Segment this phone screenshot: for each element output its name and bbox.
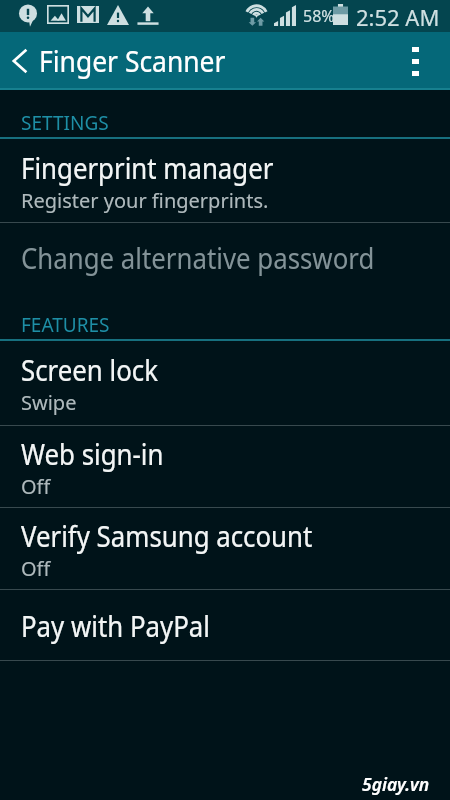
- staticText: 58%: [303, 5, 335, 27]
- button[interactable]: Verify Samsung account: [0, 508, 450, 589]
- button[interactable]: Change alternative password: [0, 223, 450, 292]
- staticText: Verify Samsung account: [21, 516, 313, 555]
- button[interactable]: Fingerprint manager: [0, 139, 450, 222]
- staticText: Register your fingerprints.: [21, 187, 269, 214]
- staticText: Fingerprint manager: [21, 148, 274, 187]
- other: Navigate up: [12, 48, 27, 74]
- staticText: 2:52 AM: [356, 2, 440, 32]
- staticText: Web sign-in: [21, 434, 163, 473]
- staticText: Change alternative password: [21, 238, 374, 277]
- button[interactable]: More options: [400, 32, 450, 90]
- staticText: Off: [21, 555, 51, 582]
- button[interactable]: Navigate up: [0, 32, 252, 90]
- staticText: SETTINGS: [21, 110, 109, 136]
- staticText: FEATURES: [21, 312, 110, 338]
- staticText: Swipe: [21, 389, 77, 416]
- staticText: Off: [21, 473, 51, 500]
- staticText: Finger Scanner: [39, 41, 226, 80]
- button[interactable]: Screen lock: [0, 341, 450, 425]
- staticText: Screen lock: [21, 350, 158, 389]
- staticText: 5giay.vn: [362, 772, 430, 796]
- staticText: Pay with PayPal: [21, 606, 211, 645]
- button[interactable]: Pay with PayPal: [0, 590, 450, 660]
- button[interactable]: Web sign-in: [0, 426, 450, 507]
